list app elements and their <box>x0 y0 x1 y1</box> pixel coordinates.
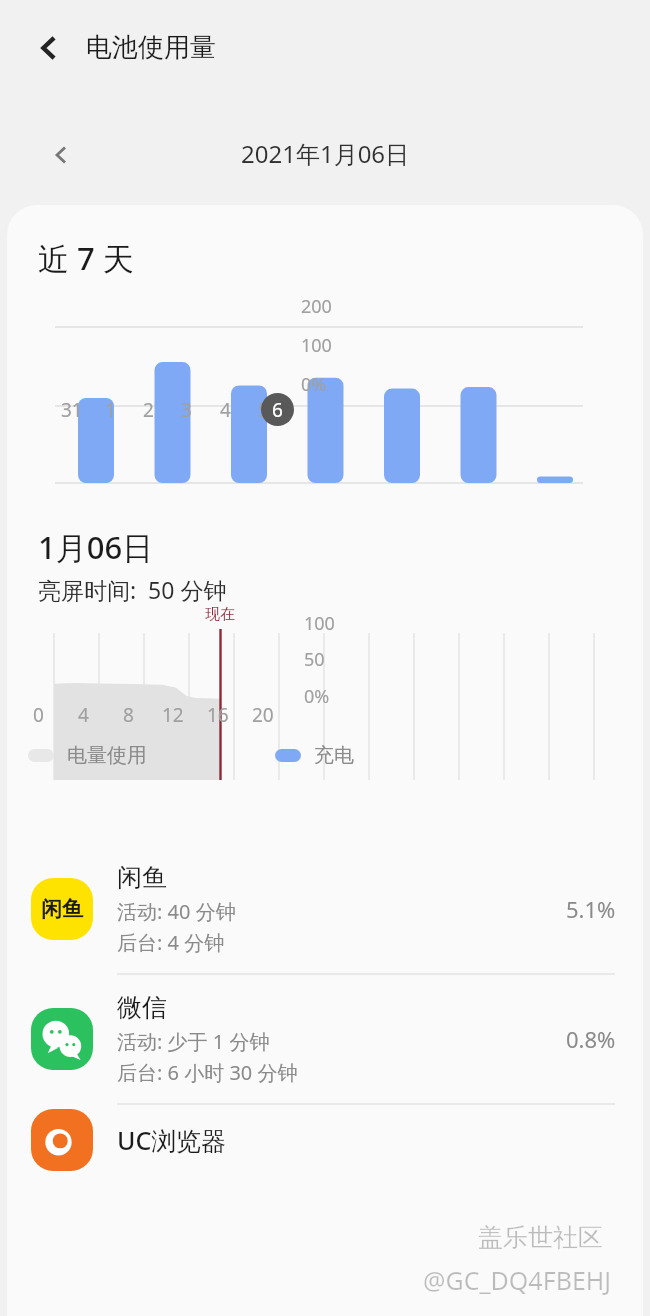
staticText: 闲鱼 <box>117 862 167 893</box>
staticText: 活动: 少于 1 分钟 <box>117 1028 270 1055</box>
staticText: 电量使用 <box>67 743 147 768</box>
staticText: 8 <box>123 702 134 728</box>
staticText: 后台: 4 分钟 <box>117 929 225 956</box>
staticText: 后台: 6 小时 30 分钟 <box>117 1059 298 1086</box>
staticText: 5.1% <box>566 894 616 924</box>
staticText: 31 <box>61 397 83 423</box>
staticText: 12 <box>162 702 184 728</box>
staticText: 活动: 40 分钟 <box>117 898 236 925</box>
staticText: 0 <box>33 702 44 728</box>
staticText: 2 <box>143 397 154 423</box>
button[interactable]: 闲鱼 <box>7 845 643 973</box>
staticText: 3 <box>181 397 192 423</box>
staticText: 2021年1月06日 <box>241 137 410 170</box>
staticText: UC浏览器 <box>117 1123 227 1157</box>
staticText: @GC_DQ4FBEHJ <box>423 1263 612 1297</box>
staticText: 0% <box>301 372 327 397</box>
staticText: 1月06日 <box>38 526 154 568</box>
staticText: 4 <box>220 397 231 423</box>
button[interactable]: UC浏览器 <box>7 1105 643 1175</box>
staticText: 微信 <box>117 992 167 1023</box>
staticText: 6 <box>272 397 283 423</box>
button[interactable]: 6 <box>261 393 294 426</box>
button[interactable]: Back <box>18 17 80 79</box>
staticText: 闲鱼 <box>41 896 83 922</box>
staticText: 100 <box>301 333 332 358</box>
staticText: 充电 <box>314 743 354 768</box>
staticText: 亮屏时间: 50 分钟 <box>38 574 227 605</box>
staticText: 现在 <box>205 605 235 624</box>
staticText: 电池使用量 <box>86 31 216 64</box>
staticText: 0.8% <box>566 1024 616 1054</box>
staticText: 近 7 天 <box>38 237 134 279</box>
staticText: 200 <box>301 294 332 319</box>
staticText: 100 <box>304 611 335 636</box>
staticText: 盖乐世社区 <box>478 1222 603 1253</box>
button[interactable]: Previous day <box>32 126 90 184</box>
button[interactable]: 微信 <box>7 975 643 1103</box>
staticText: 20 <box>252 702 274 728</box>
staticText: 5 <box>258 397 269 423</box>
staticText: 1 <box>105 397 116 423</box>
staticText: 0% <box>304 684 330 709</box>
staticText: 16 <box>207 702 229 728</box>
staticText: 4 <box>78 702 89 728</box>
staticText: 50 <box>304 647 325 672</box>
